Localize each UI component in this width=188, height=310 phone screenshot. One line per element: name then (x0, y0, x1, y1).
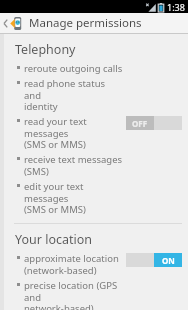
staticText: approximate location (network-based) (24, 252, 119, 277)
staticText: OFF (132, 118, 148, 129)
staticText: ON (162, 255, 175, 266)
staticText: edit your text messages (SMS or MMS) (24, 180, 123, 216)
button[interactable]: edit your text messages (SMS or MMS) (4, 180, 188, 216)
button[interactable]: read your text messages (SMS or MMS) (4, 115, 188, 151)
staticText: read your text messages (SMS or MMS) (24, 115, 123, 151)
button[interactable]: Navigate up (0, 13, 188, 33)
button[interactable]: read phone status and identity (4, 77, 188, 113)
staticText: read phone status and identity (24, 77, 123, 113)
staticText: precise location (GPS and network-based) (24, 279, 123, 310)
button[interactable]: precise location (GPS and network-based) (4, 279, 188, 310)
staticText: reroute outgoing calls (24, 62, 123, 75)
button[interactable]: approximate location (network-based) (4, 252, 188, 277)
staticText: 1:38 (167, 1, 185, 13)
staticText: Your location (15, 231, 92, 248)
staticText: Manage permissions (29, 15, 142, 31)
staticText: Telephony (15, 41, 76, 58)
button[interactable]: reroute outgoing calls (4, 62, 188, 75)
button[interactable]: receive text messages (SMS) (4, 153, 188, 178)
button[interactable]: Permission off (126, 116, 182, 130)
button[interactable]: Permission on (126, 253, 182, 267)
staticText: receive text messages (SMS) (24, 153, 123, 178)
